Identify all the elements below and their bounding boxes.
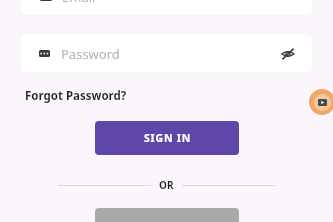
button[interactable] — [95, 208, 239, 222]
staticText: Password — [61, 45, 276, 63]
staticText: SIGN IN — [144, 131, 191, 145]
button[interactable]: Media player — [309, 89, 333, 115]
button[interactable]: Forgot Password? — [24, 86, 128, 106]
button[interactable]: Show password — [276, 42, 300, 66]
button[interactable]: Email — [21, 0, 312, 15]
button[interactable]: SIGN IN — [95, 121, 239, 155]
staticText: OR — [159, 178, 174, 192]
staticText: Email — [62, 0, 96, 6]
staticText: Forgot Password? — [25, 88, 127, 104]
button[interactable]: Password — [21, 35, 312, 72]
